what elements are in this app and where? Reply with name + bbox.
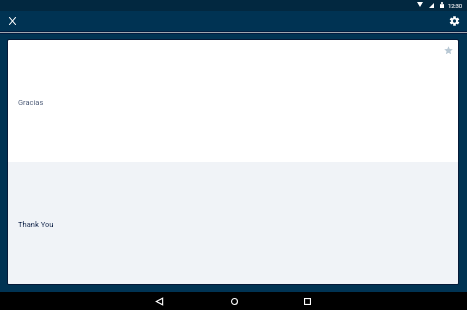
button[interactable]: Thank You xyxy=(8,162,458,284)
button[interactable]: Recents xyxy=(300,294,314,308)
staticText: 12:30 xyxy=(448,2,462,9)
button[interactable]: Settings xyxy=(447,14,461,28)
button[interactable]: Gracias xyxy=(8,40,458,162)
button[interactable]: Favorite xyxy=(442,44,455,57)
button[interactable]: Home xyxy=(227,294,241,308)
button[interactable]: Back xyxy=(152,294,166,308)
staticText: Thank You xyxy=(18,220,54,229)
staticText: Gracias xyxy=(18,98,44,107)
button[interactable]: Close xyxy=(5,14,19,28)
